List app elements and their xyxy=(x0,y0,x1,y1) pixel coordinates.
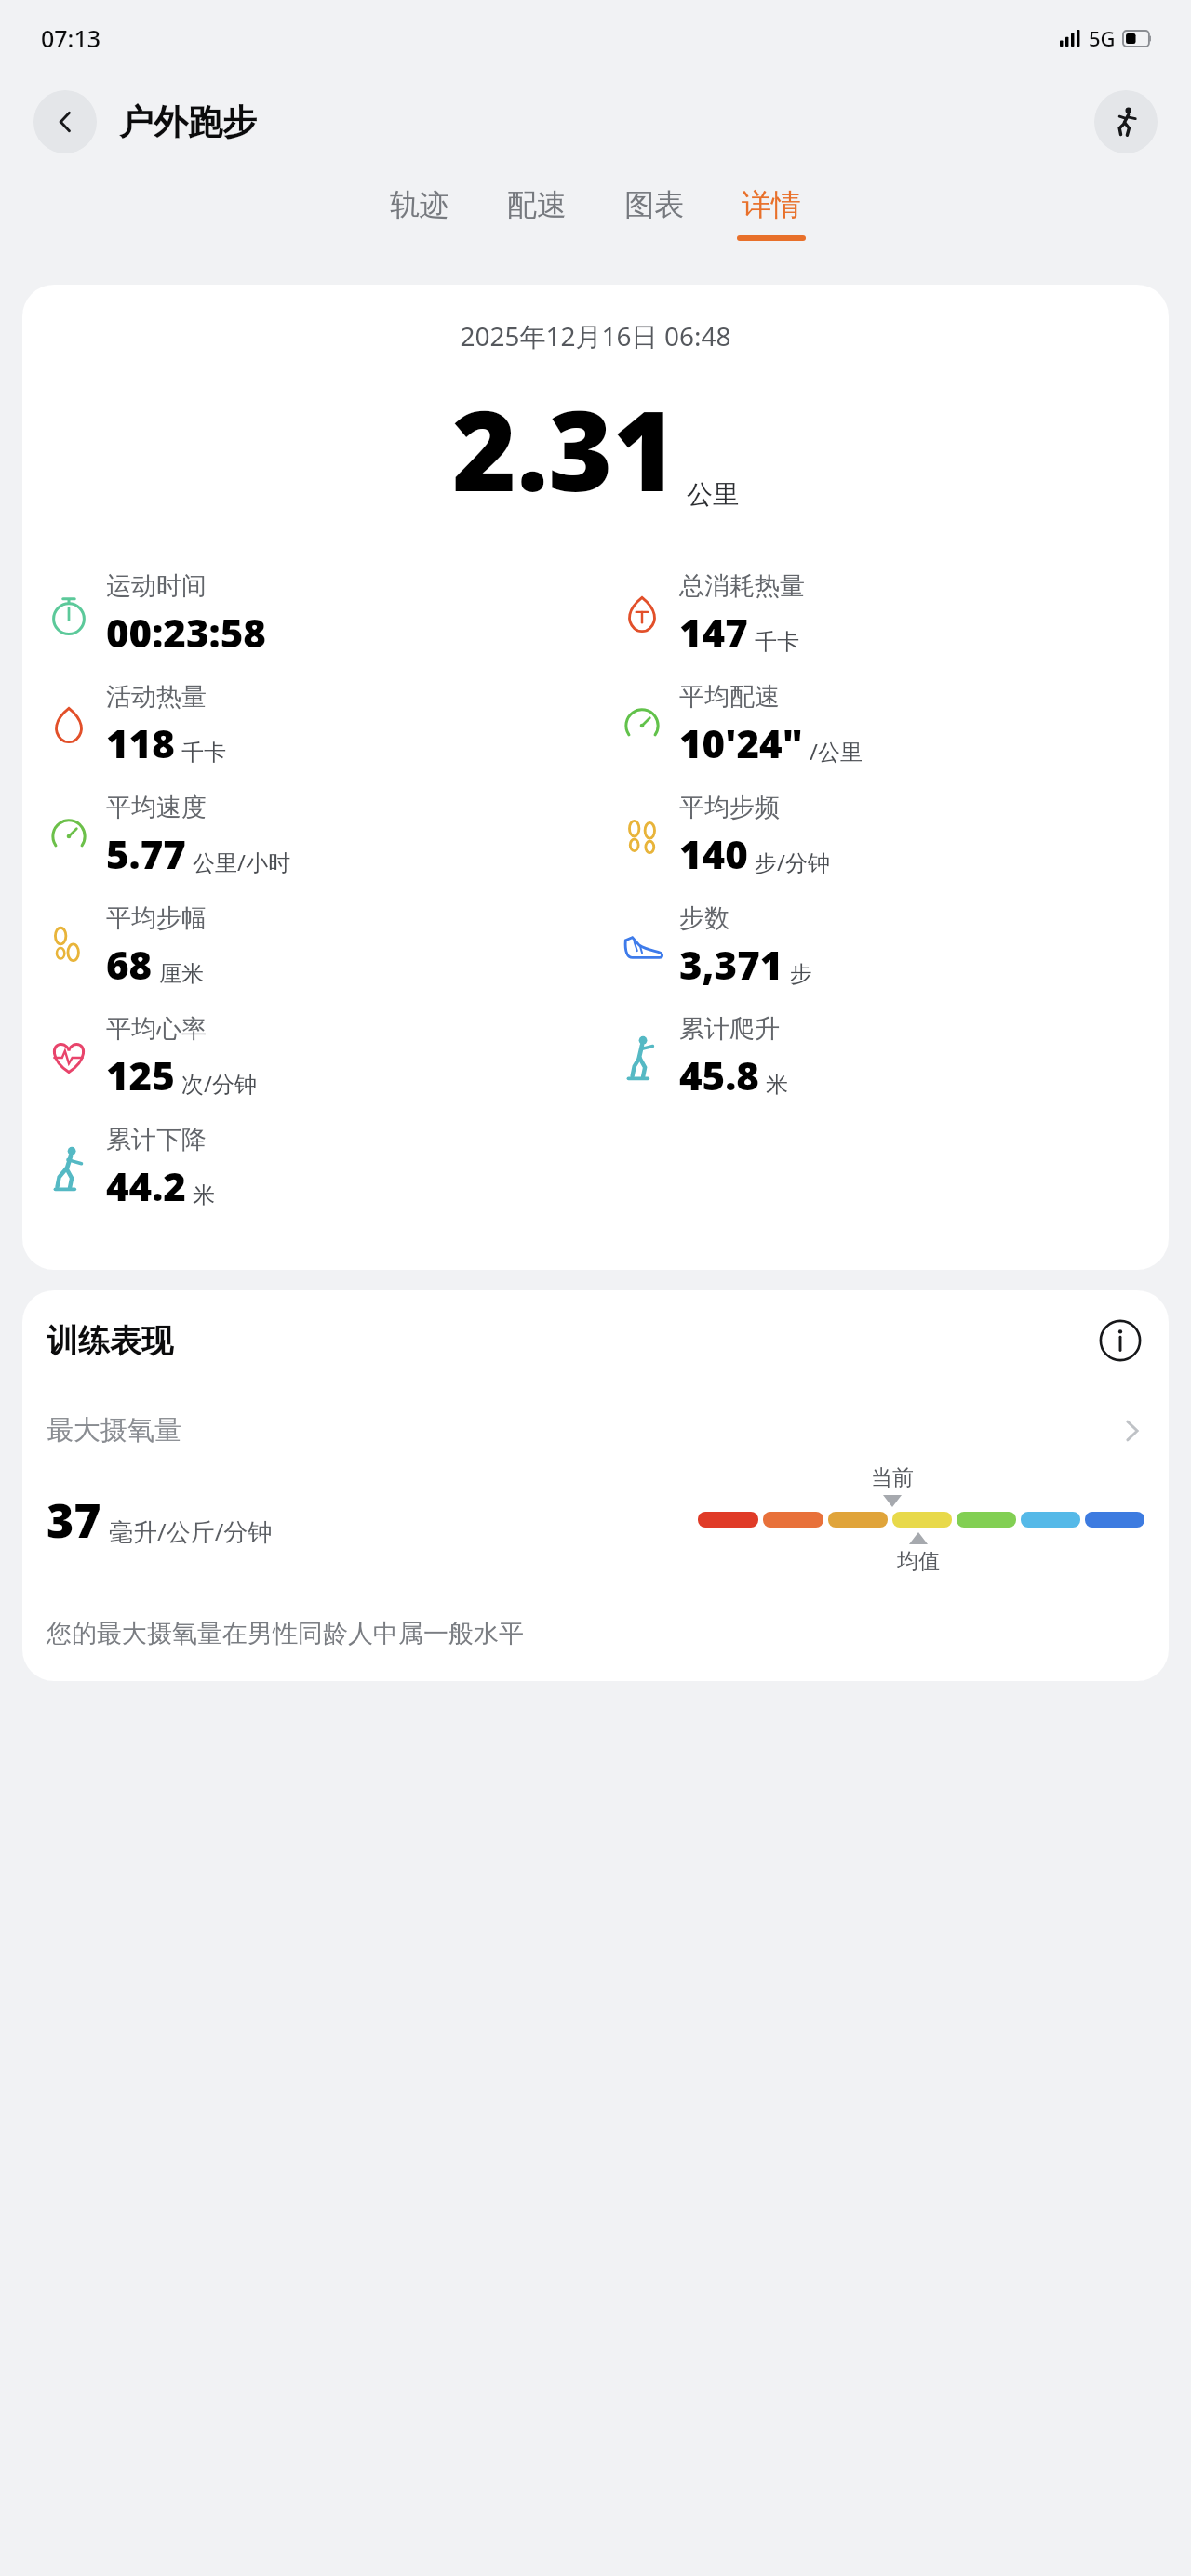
staticText: 45.8 xyxy=(679,1048,759,1101)
staticText: 图表 xyxy=(624,186,684,223)
staticText: 累计下降 xyxy=(106,1124,207,1155)
staticText: 平均速度 xyxy=(106,792,207,823)
staticText: 千卡 xyxy=(181,739,226,767)
staticText: 68 xyxy=(106,938,153,991)
staticText: 147 xyxy=(679,606,748,659)
staticText: 毫升/公斤/分钟 xyxy=(109,1515,273,1548)
button[interactable]: Activity type xyxy=(1094,90,1158,153)
button[interactable]: 活动热量 xyxy=(22,681,595,769)
staticText: 118 xyxy=(106,716,175,769)
staticText: 平均步频 xyxy=(679,792,780,823)
staticText: 米 xyxy=(193,1181,215,1209)
staticText: 平均心率 xyxy=(106,1013,207,1045)
button[interactable]: 平均步频 xyxy=(595,792,1169,880)
button[interactable]: 步数 xyxy=(595,902,1169,991)
button[interactable]: 累计爬升 xyxy=(595,1013,1169,1101)
button[interactable]: Info xyxy=(1096,1316,1144,1365)
button[interactable]: 平均心率 xyxy=(22,1013,595,1101)
button[interactable]: 配速 xyxy=(488,180,586,247)
staticText: 当前 xyxy=(871,1464,914,1491)
button[interactable]: 累计下降 xyxy=(22,1124,595,1212)
staticText: 次/分钟 xyxy=(181,1068,257,1099)
staticText: 10'24" xyxy=(679,716,803,769)
button[interactable]: 运动时间 xyxy=(22,570,595,659)
staticText: 训练表现 xyxy=(47,1321,173,1361)
staticText: 2.31 xyxy=(452,374,677,524)
staticText: 步/分钟 xyxy=(755,847,830,877)
button[interactable]: 轨迹 xyxy=(370,180,469,247)
button[interactable]: 平均配速 xyxy=(595,681,1169,769)
staticText: 140 xyxy=(679,827,748,880)
staticText: 125 xyxy=(106,1048,175,1101)
staticText: 活动热量 xyxy=(106,681,207,713)
staticText: 步 xyxy=(790,960,812,988)
button[interactable]: 平均速度 xyxy=(22,792,595,880)
staticText: 您的最大摄氧量在男性同龄人中属一般水平 xyxy=(47,1618,524,1649)
staticText: 00:23:58 xyxy=(106,606,266,659)
staticText: 运动时间 xyxy=(106,570,207,602)
staticText: 累计爬升 xyxy=(679,1013,780,1045)
staticText: 步数 xyxy=(679,902,729,934)
staticText: 2025年12月16日 06:48 xyxy=(22,318,1169,354)
staticText: 3,371 xyxy=(679,938,783,991)
staticText: 千卡 xyxy=(755,628,799,656)
button[interactable]: 平均步幅 xyxy=(22,902,595,991)
button[interactable]: 图表 xyxy=(605,180,703,247)
staticText: 37 xyxy=(47,1488,101,1552)
staticText: 总消耗热量 xyxy=(679,570,805,602)
staticText: 平均配速 xyxy=(679,681,780,713)
staticText: 米 xyxy=(766,1071,788,1099)
staticText: 详情 xyxy=(742,186,801,223)
button[interactable]: 总消耗热量 xyxy=(595,570,1169,659)
button[interactable]: Back xyxy=(33,90,97,153)
staticText: 最大摄氧量 xyxy=(47,1413,181,1448)
button[interactable]: 最大摄氧量 xyxy=(22,1413,1169,1448)
staticText: 厘米 xyxy=(159,960,204,988)
staticText: 5G xyxy=(1089,24,1116,52)
staticText: 配速 xyxy=(507,186,567,223)
staticText: 平均步幅 xyxy=(106,902,207,934)
staticText: 5.77 xyxy=(106,827,186,880)
button[interactable]: 详情 xyxy=(722,180,821,247)
staticText: 户外跑步 xyxy=(119,100,257,144)
staticText: 均值 xyxy=(897,1548,940,1575)
staticText: 公里/小时 xyxy=(193,847,290,877)
staticText: 44.2 xyxy=(106,1159,186,1212)
staticText: 07:13 xyxy=(41,22,101,54)
staticText: 公里 xyxy=(687,478,739,511)
staticText: /公里 xyxy=(810,736,863,767)
staticText: 轨迹 xyxy=(390,186,449,223)
